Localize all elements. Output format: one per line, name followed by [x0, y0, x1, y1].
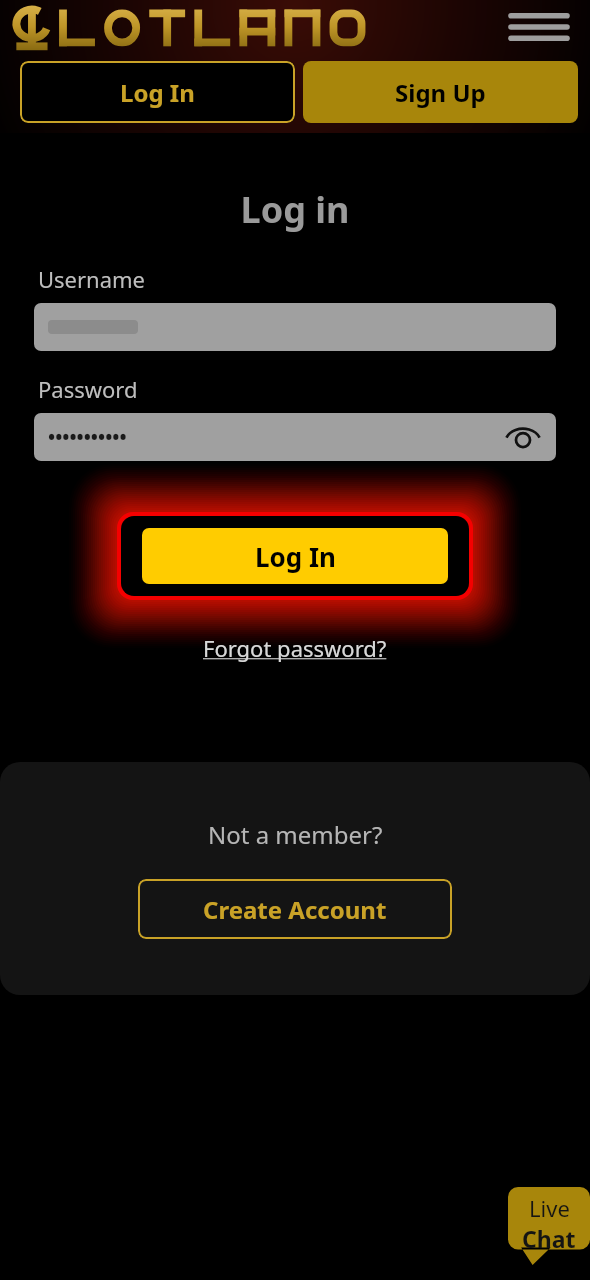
staticText: Chat [522, 1223, 576, 1254]
button[interactable]: Menu [508, 7, 570, 47]
staticText: Log In [120, 76, 195, 109]
staticText: Log In [255, 539, 336, 574]
button[interactable]: Show password [500, 417, 546, 457]
button[interactable]: Sign Up [303, 61, 578, 123]
staticText: Sign Up [395, 76, 486, 109]
staticText: Username [38, 264, 146, 294]
button[interactable]: Forgot password? [195, 629, 395, 667]
staticText: Not a member? [208, 818, 383, 851]
staticText: Create Account [203, 893, 387, 926]
button[interactable]: ••••••••••• [34, 413, 556, 461]
button[interactable]: Live Chat [508, 1187, 590, 1265]
staticText: Password [38, 374, 138, 404]
button[interactable]: Log In [142, 528, 448, 584]
button[interactable]: Create Account [138, 879, 452, 939]
staticText: Forgot password? [203, 633, 387, 663]
button[interactable] [34, 303, 556, 351]
staticText: Live [529, 1193, 570, 1223]
button[interactable]: Log In [20, 61, 295, 123]
staticText: Log in [0, 185, 590, 234]
staticText: ••••••••••• [48, 424, 127, 450]
